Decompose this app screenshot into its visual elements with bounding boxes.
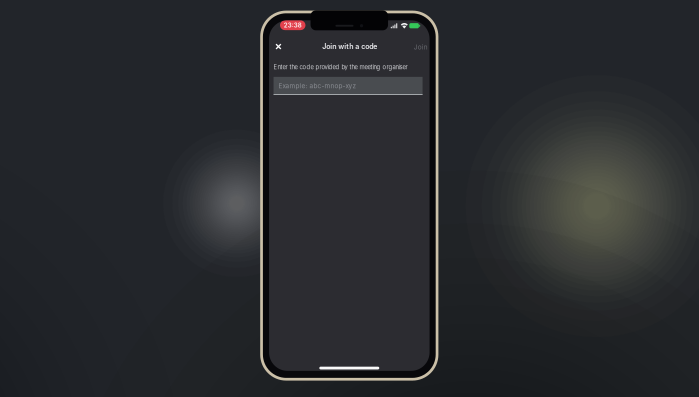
staticText: Enter the code provided by the meeting o…	[273, 64, 407, 71]
staticText: Join	[414, 43, 428, 51]
staticText: 23:38	[284, 21, 302, 29]
button[interactable]: Close	[267, 36, 289, 56]
staticText: Example: abc-mnop-xyz	[278, 82, 356, 90]
staticText: Join with a code	[322, 42, 377, 51]
button[interactable]: Join	[408, 40, 428, 54]
